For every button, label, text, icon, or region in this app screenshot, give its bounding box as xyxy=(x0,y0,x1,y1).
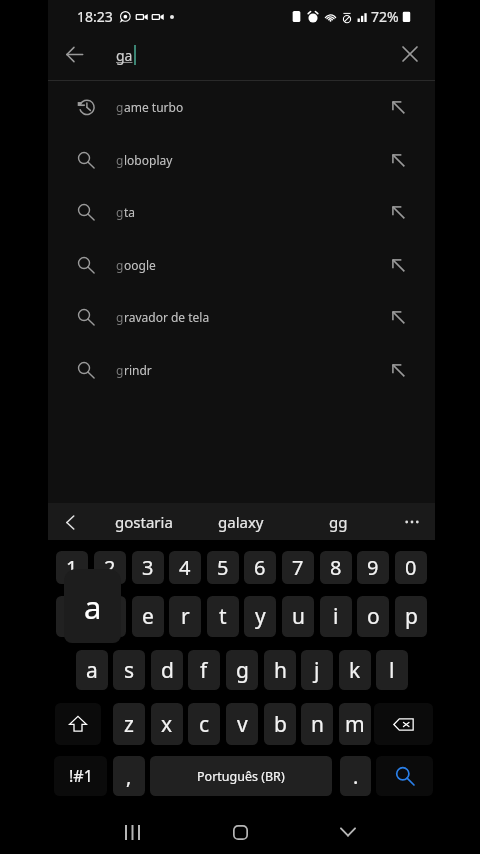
button[interactable]: galaxy xyxy=(196,503,286,540)
button[interactable]: g xyxy=(48,81,435,133)
button[interactable]: g xyxy=(48,291,435,343)
staticText: b xyxy=(274,710,287,739)
staticText: o xyxy=(367,602,380,631)
staticText: !#1 xyxy=(69,765,93,787)
staticText: . xyxy=(353,763,359,790)
button[interactable]: l xyxy=(376,650,408,690)
button[interactable]: 1 xyxy=(56,551,88,584)
button[interactable]: x xyxy=(151,703,183,745)
button[interactable]: More suggestions xyxy=(397,507,427,537)
staticText: ame turbo xyxy=(124,99,184,115)
button[interactable]: 3 xyxy=(132,551,164,584)
button[interactable]: 4 xyxy=(169,551,201,584)
staticText: gostaria xyxy=(115,512,173,532)
staticText: c xyxy=(199,710,210,739)
button[interactable]: y xyxy=(244,596,276,637)
button[interactable]: 9 xyxy=(357,551,389,584)
staticText: loboplay xyxy=(124,152,173,168)
button[interactable]: 8 xyxy=(320,551,352,584)
button[interactable]: w xyxy=(94,596,126,637)
button[interactable]: Back xyxy=(328,812,368,852)
button[interactable]: Back xyxy=(55,35,93,73)
staticText: 4 xyxy=(179,554,191,581)
staticText: h xyxy=(274,656,287,685)
button[interactable]: Shift xyxy=(55,703,101,745)
button[interactable]: m xyxy=(339,703,371,745)
button[interactable]: s xyxy=(113,650,145,690)
staticText: a xyxy=(86,656,98,685)
staticText: 6 xyxy=(254,554,266,581)
button[interactable]: o xyxy=(357,596,389,637)
button[interactable]: e xyxy=(132,596,164,637)
button[interactable]: k xyxy=(339,650,371,690)
button[interactable]: v xyxy=(226,703,258,745)
button[interactable]: Recents xyxy=(112,812,152,852)
button[interactable]: g xyxy=(226,650,258,690)
staticText: 8 xyxy=(330,554,342,581)
staticText: 72% xyxy=(371,7,399,26)
button[interactable]: h xyxy=(264,650,296,690)
button[interactable]: q xyxy=(56,596,88,637)
button[interactable]: g xyxy=(48,239,435,291)
staticText: 5 xyxy=(217,554,229,581)
button[interactable]: !#1 xyxy=(54,756,107,796)
staticText: ga xyxy=(116,46,133,65)
staticText: , xyxy=(126,763,132,790)
staticText: p xyxy=(405,602,418,631)
button[interactable]: g xyxy=(48,134,435,186)
button[interactable]: f xyxy=(188,650,220,690)
button[interactable]: p xyxy=(395,596,427,637)
staticText: k xyxy=(349,656,361,685)
button[interactable]: b xyxy=(264,703,296,745)
button[interactable]: r xyxy=(169,596,201,637)
button[interactable]: . xyxy=(340,756,371,796)
button[interactable]: i xyxy=(320,596,352,637)
button[interactable]: Home xyxy=(220,812,260,852)
button[interactable]: Previous suggestions xyxy=(55,507,85,537)
button[interactable]: 7 xyxy=(282,551,314,584)
button[interactable]: g xyxy=(48,186,435,238)
staticText: 7 xyxy=(292,554,304,581)
button[interactable]: u xyxy=(282,596,314,637)
staticText: 0 xyxy=(405,554,417,581)
button[interactable]: j xyxy=(301,650,333,690)
staticText: t xyxy=(219,602,227,631)
button[interactable]: n xyxy=(301,703,333,745)
button[interactable]: gg xyxy=(293,503,383,540)
button[interactable]: , xyxy=(113,756,145,796)
button[interactable]: Clear search xyxy=(393,37,427,71)
staticText: x xyxy=(161,710,173,739)
button[interactable]: 2 xyxy=(94,551,126,584)
button[interactable]: a xyxy=(76,650,108,690)
staticText: gg xyxy=(329,512,348,532)
staticText: d xyxy=(161,656,174,685)
staticText: 3 xyxy=(142,554,154,581)
button[interactable]: Search xyxy=(376,756,433,796)
button[interactable]: Backspace xyxy=(374,703,433,745)
staticText: rindr xyxy=(124,362,152,378)
button[interactable]: z xyxy=(113,703,145,745)
button[interactable]: gostaria xyxy=(99,503,189,540)
button[interactable]: 5 xyxy=(207,551,239,584)
staticText: z xyxy=(124,710,134,739)
staticText: g xyxy=(116,152,124,168)
button[interactable]: t xyxy=(207,596,239,637)
staticText: oogle xyxy=(124,257,156,273)
staticText: galaxy xyxy=(218,512,264,532)
staticText: v xyxy=(237,710,248,739)
staticText: g xyxy=(116,204,124,220)
button[interactable]: 6 xyxy=(244,551,276,584)
staticText: m xyxy=(345,710,365,739)
button[interactable]: g xyxy=(48,344,435,396)
button[interactable]: 0 xyxy=(395,551,427,584)
button[interactable]: Português (BR) xyxy=(150,756,332,796)
button[interactable]: d xyxy=(151,650,183,690)
button[interactable]: c xyxy=(188,703,220,745)
staticText: 18:23 xyxy=(77,7,113,26)
staticText: y xyxy=(255,602,266,631)
staticText: a xyxy=(84,586,102,628)
staticText: n xyxy=(311,710,324,739)
staticText: f xyxy=(200,656,208,685)
